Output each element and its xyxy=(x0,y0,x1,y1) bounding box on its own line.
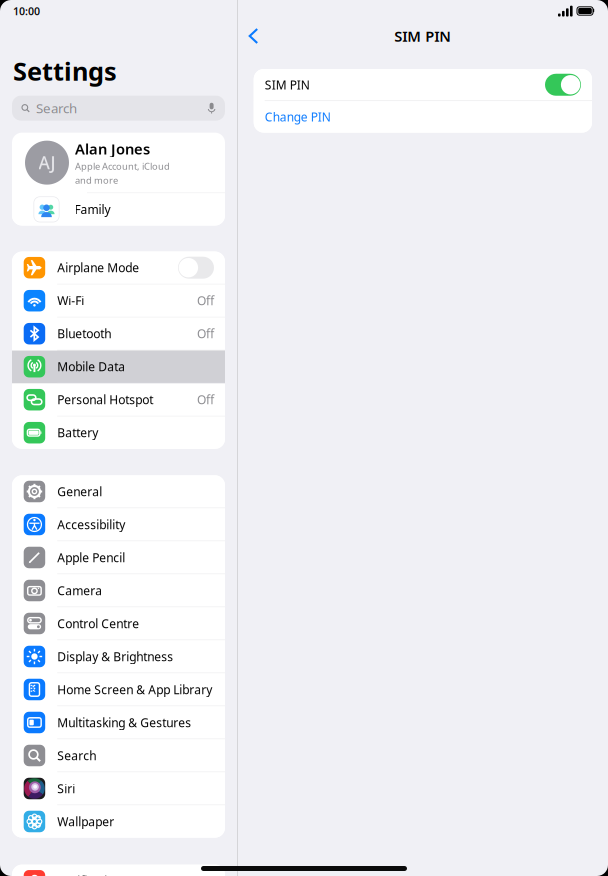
button[interactable]: Change PIN xyxy=(254,101,592,133)
staticText: Off xyxy=(197,392,214,408)
staticText: Camera xyxy=(57,582,102,598)
button[interactable]: Airplane Mode xyxy=(12,251,225,284)
button[interactable]: Display & Brightness xyxy=(12,640,225,673)
button[interactable]: Search xyxy=(0,96,237,121)
staticText: Battery xyxy=(57,425,98,441)
button[interactable]: Apple Pencil xyxy=(12,541,225,574)
button[interactable]: Wallpaper xyxy=(12,805,225,838)
staticText: Wi-Fi xyxy=(57,293,84,309)
staticText: Off xyxy=(197,293,214,309)
button[interactable]: Back xyxy=(240,19,268,52)
button[interactable]: AJ xyxy=(12,133,225,193)
button[interactable]: Battery xyxy=(12,416,225,449)
staticText: Settings xyxy=(13,54,117,88)
staticText: Search xyxy=(36,99,77,117)
staticText: General xyxy=(57,483,102,499)
staticText: Airplane Mode xyxy=(57,260,139,276)
staticText: Personal Hotspot xyxy=(57,392,153,408)
button[interactable]: Multitasking & Gestures xyxy=(12,706,225,739)
staticText: Apple Pencil xyxy=(57,549,125,565)
button[interactable]: Search xyxy=(12,739,225,772)
staticText: Search xyxy=(57,747,96,763)
button[interactable]: Accessibility xyxy=(12,508,225,541)
staticText: Apple Account, iCloud xyxy=(75,160,170,172)
staticText: Display & Brightness xyxy=(57,648,173,664)
button[interactable]: Camera xyxy=(12,574,225,607)
staticText: SIM PIN xyxy=(394,26,451,46)
staticText: Control Centre xyxy=(57,615,139,631)
staticText: AJ xyxy=(38,151,55,174)
staticText: Family xyxy=(74,201,110,217)
staticText: Bluetooth xyxy=(57,326,111,342)
staticText: Siri xyxy=(57,780,75,796)
staticText: Mobile Data xyxy=(57,359,125,375)
button[interactable]: Mobile Data xyxy=(12,350,225,383)
button[interactable]: Family xyxy=(12,193,225,225)
button[interactable]: Control Centre xyxy=(12,607,225,640)
staticText: Wallpaper xyxy=(57,813,114,829)
button[interactable]: Bluetooth xyxy=(12,317,225,350)
staticText: and more xyxy=(75,174,118,186)
button[interactable]: Siri xyxy=(12,772,225,805)
staticText: Notifications xyxy=(57,873,127,876)
button[interactable]: Wi-Fi xyxy=(12,284,225,317)
button[interactable]: Home Screen & App Library xyxy=(12,673,225,706)
staticText: Change PIN xyxy=(265,109,331,125)
staticText: Off xyxy=(197,326,214,342)
button[interactable]: Notifications xyxy=(12,865,225,876)
staticText: SIM PIN xyxy=(265,77,310,93)
staticText: Multitasking & Gestures xyxy=(57,714,191,730)
staticText: Alan Jones xyxy=(75,139,150,158)
staticText: Home Screen & App Library xyxy=(57,681,212,697)
staticText: Accessibility xyxy=(57,516,125,532)
button[interactable]: SIM PIN xyxy=(254,69,592,100)
staticText: 10:00 xyxy=(13,4,40,18)
button[interactable]: General xyxy=(12,475,225,508)
button[interactable]: Personal Hotspot xyxy=(12,383,225,416)
